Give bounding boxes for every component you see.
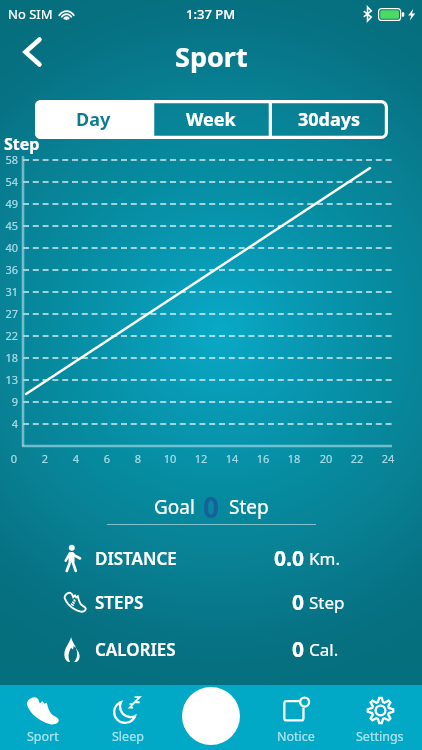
button[interactable]: CALORIES (0, 628, 422, 670)
button[interactable]: Week (152, 100, 270, 139)
button[interactable]: STEPS (0, 581, 422, 623)
staticText: 36 (0, 262, 18, 277)
staticText: 14 (221, 451, 243, 466)
button[interactable]: Sport (0, 685, 85, 750)
staticText: 54 (0, 174, 18, 189)
staticText: STEPS (95, 591, 144, 614)
staticText: 6 (96, 451, 118, 466)
staticText: 27 (0, 306, 18, 321)
button[interactable]: DISTANCE (0, 537, 422, 579)
staticText: DISTANCE (95, 547, 177, 570)
staticText: No SIM (8, 5, 53, 23)
staticText: 18 (0, 350, 18, 365)
staticText: 16 (252, 451, 274, 466)
staticText: 1:37 PM (186, 5, 236, 23)
staticText: 58 (0, 152, 18, 167)
staticText: 0.0 (240, 544, 304, 573)
staticText: 0 (203, 488, 220, 526)
staticText: Step (309, 591, 345, 614)
staticText: Sport (27, 728, 59, 745)
staticText: 20 (315, 451, 337, 466)
staticText: 2 (34, 451, 56, 466)
staticText: 9 (0, 394, 18, 409)
staticText: 4 (65, 451, 87, 466)
button[interactable]: Back (12, 30, 52, 74)
staticText: 24 (377, 451, 399, 466)
staticText: 49 (0, 196, 18, 211)
staticText: 18 (283, 451, 305, 466)
button[interactable]: Sleep (85, 685, 170, 750)
staticText: Cal. (309, 638, 339, 661)
staticText: Sleep (112, 728, 144, 745)
button[interactable]: Notice (254, 685, 338, 750)
staticText: 45 (0, 218, 18, 233)
staticText: Sport (175, 38, 248, 75)
staticText: Settings (356, 728, 404, 745)
staticText: 30days (298, 107, 361, 132)
staticText: 22 (0, 328, 18, 343)
staticText: Day (76, 107, 111, 132)
button[interactable]: Settings (338, 685, 422, 750)
button[interactable]: 30days (270, 100, 388, 139)
staticText: 0 (3, 451, 25, 466)
staticText: Step (229, 494, 269, 520)
staticText: 0 (240, 588, 304, 617)
staticText: Notice (277, 728, 315, 745)
staticText: CALORIES (95, 638, 176, 661)
staticText: 10 (159, 451, 181, 466)
staticText: Week (186, 107, 236, 132)
staticText: 13 (0, 372, 18, 387)
staticText: 22 (346, 451, 368, 466)
button[interactable]: Day (35, 100, 152, 139)
staticText: Km. (309, 547, 340, 570)
staticText: 8 (127, 451, 149, 466)
staticText: Goal (154, 494, 195, 520)
staticText: 40 (0, 240, 18, 255)
staticText: Step (4, 133, 40, 155)
staticText: 0 (240, 635, 304, 664)
staticText: 4 (0, 416, 18, 431)
staticText: 12 (190, 451, 212, 466)
button[interactable]: Start activity (182, 687, 240, 745)
staticText: 31 (0, 284, 18, 299)
